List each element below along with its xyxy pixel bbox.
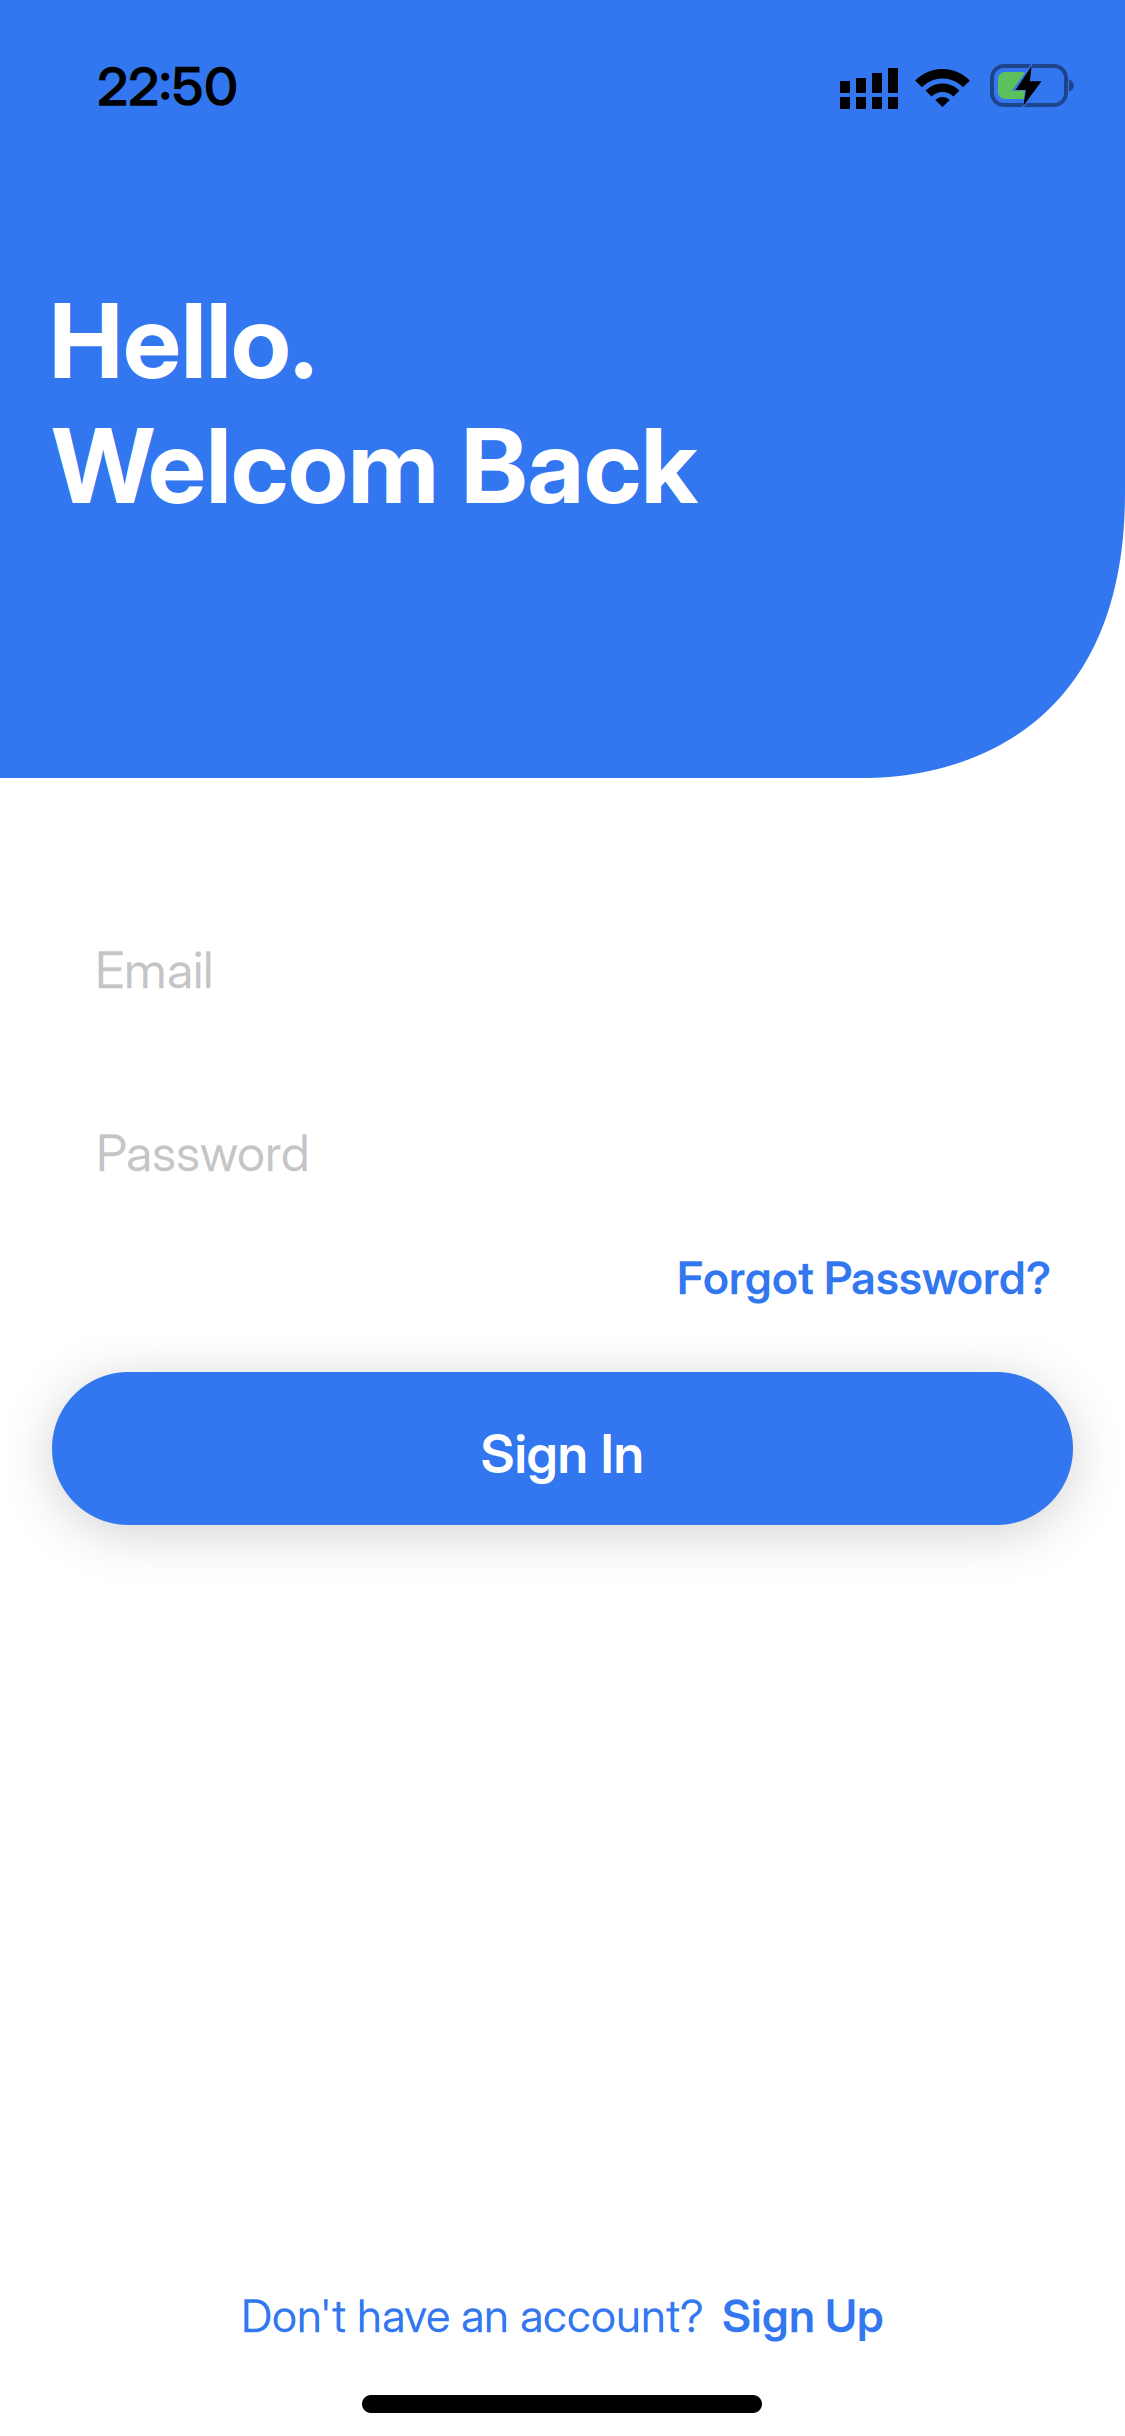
staticText: Forgot Password? [677,1251,1051,1304]
textField[interactable]: Email [95,940,213,1000]
button[interactable]: Sign Up [722,2289,884,2342]
staticText: Sign Up [722,2289,884,2342]
button[interactable]: Sign In [52,1372,1073,1525]
staticText: 22:50 [97,55,238,118]
staticText: Don't have an account? [241,2289,704,2342]
staticText: Sign In [480,1422,644,1485]
staticText: Email [95,940,213,1000]
staticText: Password [96,1123,310,1183]
button[interactable]: Forgot Password? [677,1251,1051,1304]
staticText: Hello. [49,280,316,401]
staticText: Welcom Back [52,405,697,526]
secureTextField[interactable]: Password [96,1123,310,1183]
